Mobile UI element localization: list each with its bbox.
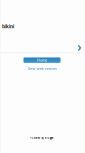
staticText: View web version bbox=[27, 66, 56, 71]
button[interactable]: Powered by Blogger. bbox=[29, 136, 54, 139]
staticText: bikini bbox=[2, 22, 14, 30]
button[interactable]: Next page bbox=[77, 44, 81, 51]
staticText: Home bbox=[37, 58, 47, 62]
staticText: Powered by Blogger. bbox=[29, 136, 54, 139]
button[interactable]: Home bbox=[23, 57, 60, 63]
button[interactable]: View web version bbox=[27, 66, 56, 71]
